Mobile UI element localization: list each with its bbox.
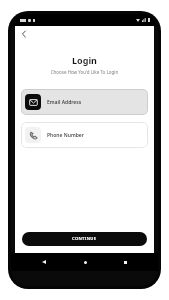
staticText: Email Address (47, 99, 82, 106)
button[interactable]: Home (80, 257, 90, 267)
staticText: Choose How You'd Like To Login (15, 69, 154, 75)
button[interactable]: Phone Number (21, 122, 148, 148)
button[interactable]: Back (18, 28, 29, 39)
button[interactable]: Recents (120, 257, 130, 267)
staticText: Phone Number (47, 132, 84, 139)
button[interactable]: Email Address (21, 89, 148, 115)
button[interactable]: Back (39, 257, 49, 267)
staticText: Login (15, 54, 154, 66)
button[interactable]: CONTINUE (22, 232, 147, 246)
staticText: CONTINUE (72, 236, 97, 242)
